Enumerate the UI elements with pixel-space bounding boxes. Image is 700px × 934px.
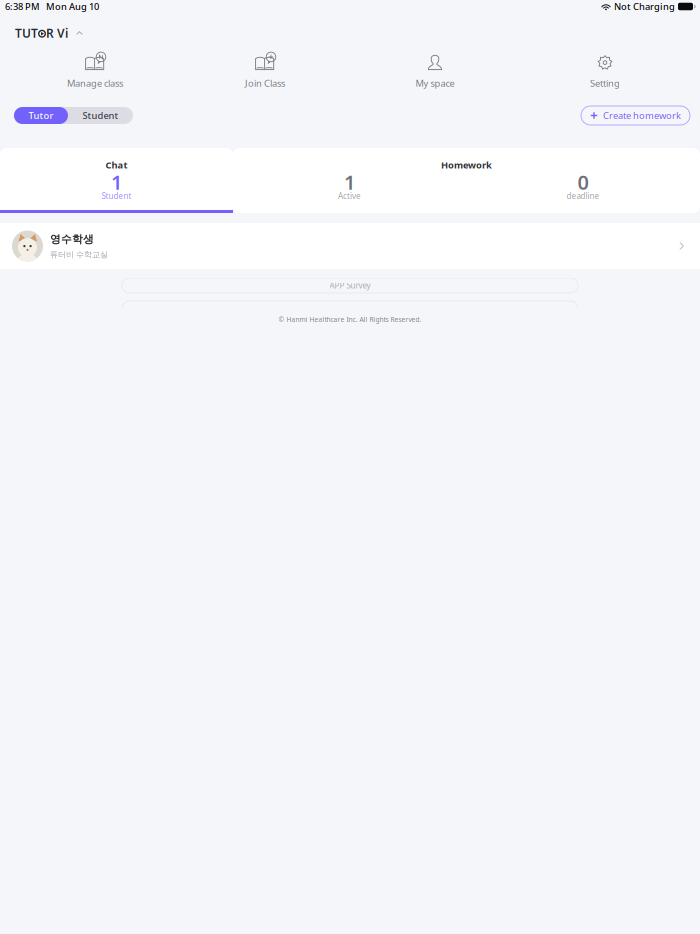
button[interactable]: 영수학생 xyxy=(0,223,700,269)
staticText: Student xyxy=(101,191,131,201)
staticText: 0 xyxy=(577,169,588,195)
staticText: Setting xyxy=(590,77,620,89)
staticText: Create homework xyxy=(603,109,681,122)
button[interactable]: My space xyxy=(350,46,520,98)
staticText: Active xyxy=(338,191,361,201)
staticText: Chat xyxy=(105,159,127,171)
staticText: My space xyxy=(415,77,454,89)
button[interactable]: 0 xyxy=(466,175,700,200)
staticText: deadline xyxy=(566,191,599,201)
staticText: APP Survey xyxy=(329,280,370,291)
staticText: R Vi xyxy=(46,25,68,41)
staticText: © Hanmi Healthcare Inc. All Rights Reser… xyxy=(278,315,421,324)
staticText: 6:38 PM xyxy=(5,0,40,13)
button[interactable]: Setting xyxy=(520,46,690,98)
staticText: Not Charging xyxy=(614,0,675,13)
staticText: Student xyxy=(82,109,118,122)
staticText: 1 xyxy=(344,169,355,195)
button[interactable]: Manage class xyxy=(10,46,180,98)
button[interactable]: Join Class xyxy=(180,46,350,98)
button[interactable]: APP Survey xyxy=(122,278,578,293)
button[interactable]: Tutor xyxy=(14,107,68,124)
button[interactable]: 1 xyxy=(233,175,466,200)
staticText: Manage class xyxy=(67,77,123,89)
staticText: TUT xyxy=(15,25,38,41)
staticText: 영수학생 xyxy=(50,232,94,246)
staticText: Homework xyxy=(441,159,492,171)
button[interactable]: Chat xyxy=(0,148,233,213)
button[interactable]: Student xyxy=(68,107,133,124)
button[interactable]: Create homework xyxy=(581,106,690,125)
staticText: Join Class xyxy=(245,77,285,89)
button[interactable]: TUT xyxy=(15,20,83,46)
staticText: Tutor xyxy=(28,109,53,122)
staticText: 튜터비 수학교실 xyxy=(50,250,108,259)
staticText: 1 xyxy=(111,169,122,195)
staticText: Mon Aug 10 xyxy=(40,0,99,13)
